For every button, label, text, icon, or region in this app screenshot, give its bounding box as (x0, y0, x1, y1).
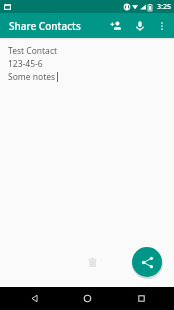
button[interactable]: Voice input (128, 14, 152, 38)
button[interactable]: Back (14, 287, 54, 310)
staticText: 123-45-6 (8, 58, 43, 70)
button[interactable]: Home (67, 287, 107, 310)
staticText: Some notes (8, 71, 56, 83)
button[interactable]: Recent apps (121, 287, 161, 310)
button[interactable]: Test Contact (8, 45, 174, 83)
button[interactable]: More options (152, 16, 172, 36)
staticText: Share Contacts (9, 19, 81, 33)
button[interactable]: Delete (79, 249, 105, 275)
button[interactable]: Add contact (104, 14, 128, 38)
staticText: 3:25 (157, 2, 171, 12)
button[interactable]: Share (132, 247, 162, 277)
staticText: Test Contact (8, 45, 58, 57)
